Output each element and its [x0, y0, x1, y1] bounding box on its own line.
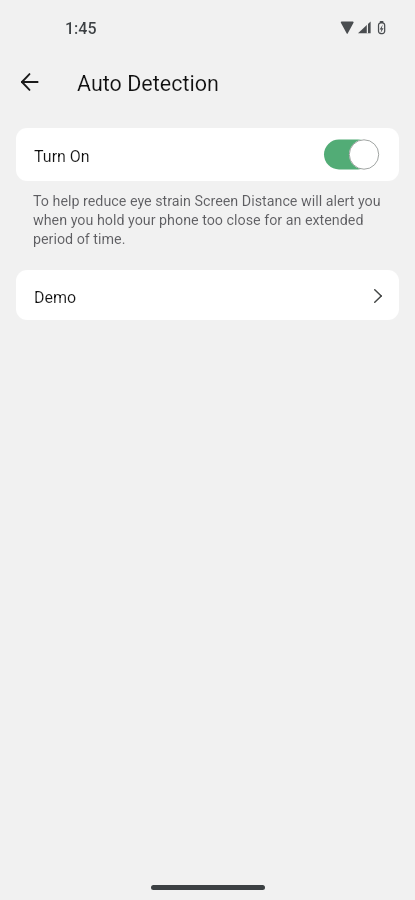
staticText: Auto Detection	[77, 71, 219, 96]
button[interactable]: Turn On	[16, 128, 399, 181]
button[interactable]: Back	[9, 63, 49, 103]
button[interactable]: Turn On, enabled	[324, 139, 379, 170]
staticText: 1:45	[65, 19, 97, 38]
staticText: Turn On	[34, 147, 90, 166]
staticText: Demo	[34, 288, 77, 307]
staticText: To help reduce eye strain Screen Distanc…	[33, 193, 385, 247]
button[interactable]: Demo	[16, 270, 399, 320]
